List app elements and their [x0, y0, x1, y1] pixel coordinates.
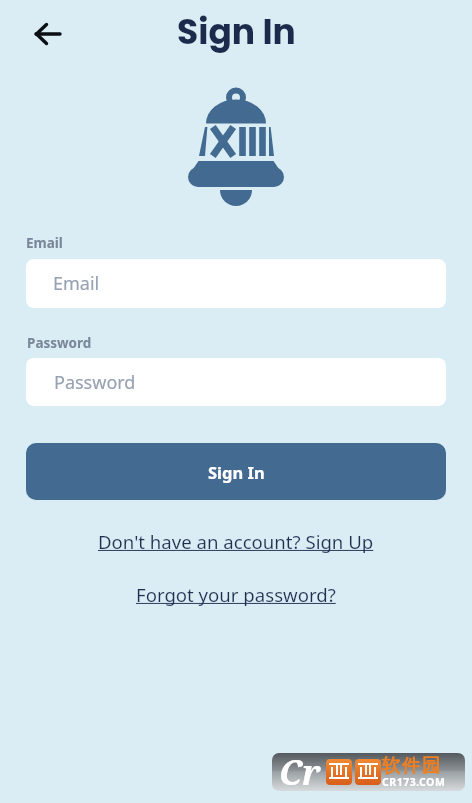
- staticText: Sign In: [208, 461, 265, 483]
- staticText: Email: [26, 234, 63, 252]
- staticText: Cr: [279, 753, 321, 787]
- button[interactable]: Password: [26, 358, 446, 406]
- staticText: 软件园: [381, 754, 441, 777]
- button[interactable]: Email: [26, 259, 446, 308]
- staticText: Password: [27, 334, 92, 352]
- button[interactable]: Sign In: [26, 443, 446, 500]
- button[interactable]: Forgot your password?: [136, 582, 336, 607]
- staticText: CR173.COM: [382, 775, 446, 789]
- staticText: Email: [53, 271, 100, 296]
- staticText: Sign In: [177, 8, 296, 56]
- button[interactable]: Don't have an account? Sign Up: [98, 529, 374, 554]
- button[interactable]: [24, 10, 72, 58]
- staticText: Password: [54, 370, 136, 395]
